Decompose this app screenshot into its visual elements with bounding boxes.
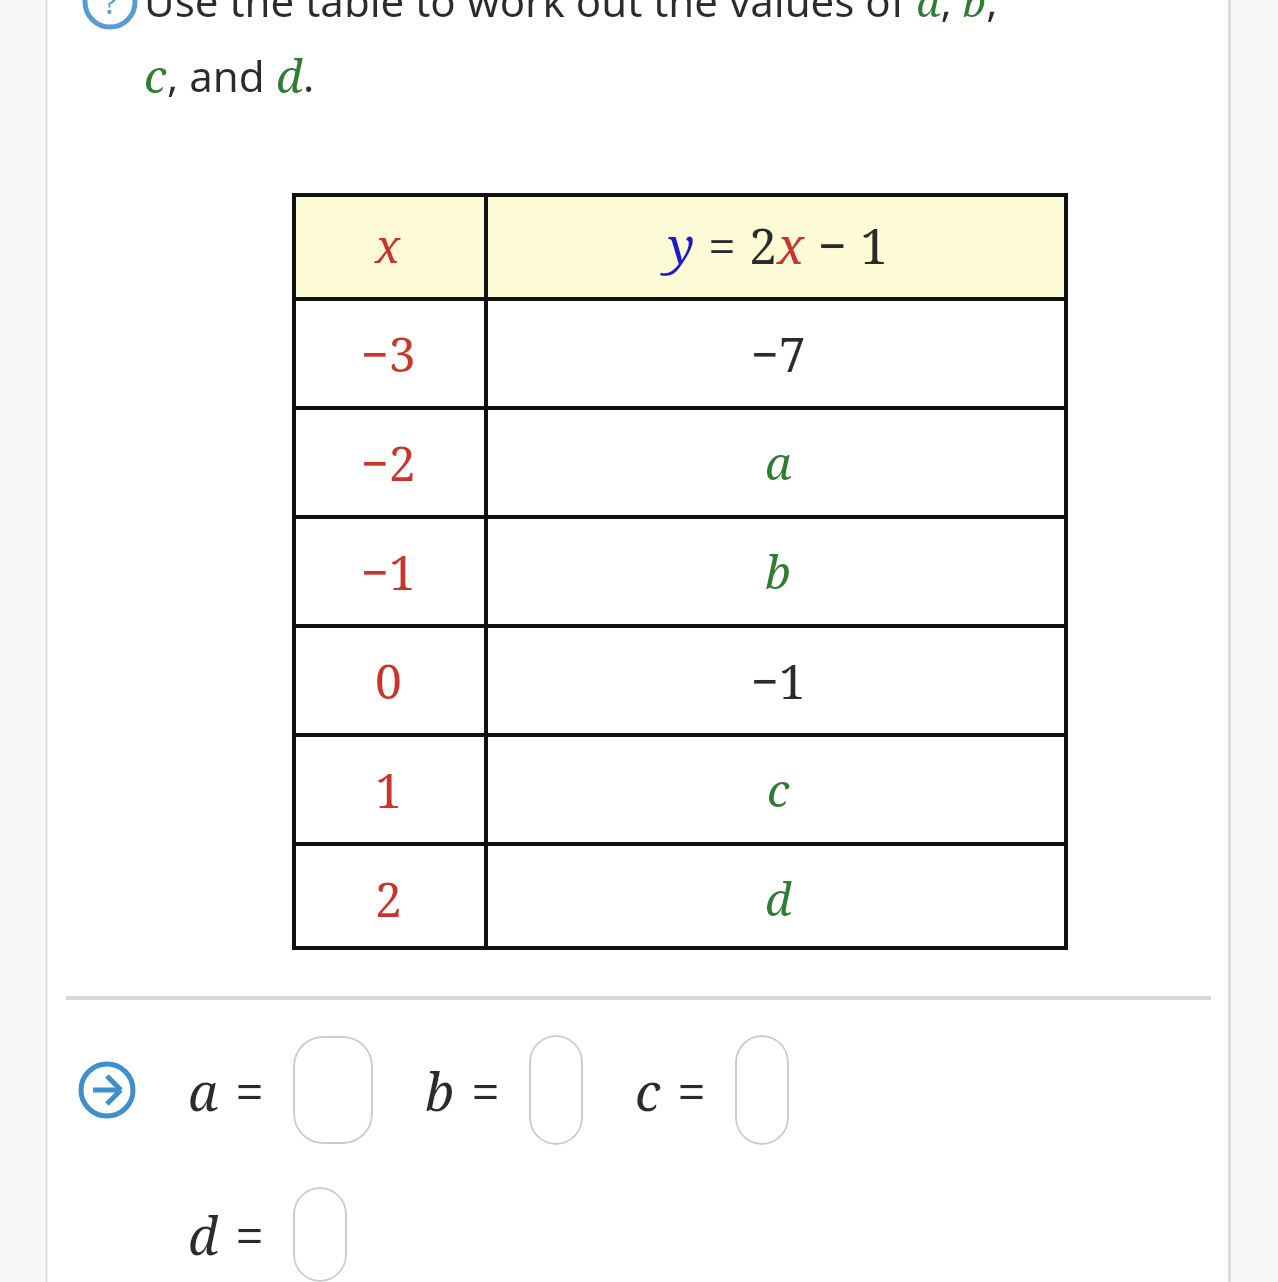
staticText: Use the table to work out the values of … [144,0,998,29]
staticText: 1 [375,757,402,822]
staticText: d [276,44,303,107]
staticText: −1 [361,539,416,604]
button[interactable]: Hint [82,0,138,30]
staticText: , and [167,47,276,104]
staticText: −2 [361,430,416,495]
staticText: c [635,1055,661,1126]
staticText: ? [103,0,118,23]
button[interactable] [735,1035,789,1145]
staticText: b [765,540,791,603]
button[interactable] [293,1187,347,1282]
staticText: 2 [375,866,402,931]
staticText: x [777,211,805,279]
staticText: = [235,1055,265,1126]
staticText: c [767,758,790,821]
staticText: −7 [751,321,806,386]
staticText: a [188,1055,219,1126]
staticText: − 1 [805,211,888,279]
staticText: b [425,1055,455,1126]
staticText: c [144,44,167,107]
staticText: a [765,431,792,494]
staticText: −1 [751,648,806,713]
button[interactable] [529,1035,583,1145]
staticText: = [235,1199,265,1270]
button[interactable] [293,1036,373,1144]
staticText: = [471,1055,501,1126]
staticText: 0 [375,648,402,713]
button[interactable]: Answer [78,1061,136,1119]
staticText: y [668,211,695,279]
staticText: = 2 [695,211,777,279]
staticText: d [765,867,792,930]
staticText: = [677,1055,707,1126]
staticText: −3 [361,321,416,386]
staticText: x [375,214,401,277]
staticText: d [188,1199,219,1270]
staticText: . [303,47,315,104]
